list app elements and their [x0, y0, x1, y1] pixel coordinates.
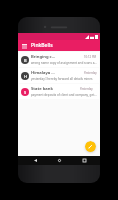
staticText: B [24, 58, 27, 63]
staticText: S [24, 90, 27, 95]
staticText: yesterday I hereby forward all details m… [31, 77, 93, 81]
staticText: Bringing copy of assig… [31, 54, 57, 60]
staticText: State bank [31, 86, 53, 92]
button[interactable]: Back [27, 156, 43, 165]
button[interactable]: H [19, 68, 99, 83]
button[interactable]: B [19, 52, 99, 67]
staticText: Yesterday [80, 87, 93, 91]
button[interactable]: Home [51, 156, 67, 165]
staticText: Yesterday [84, 71, 97, 75]
button[interactable]: Compose new message [85, 141, 96, 152]
staticText: wrong name copy of assignment and scans … [31, 61, 97, 65]
staticText: Himalaya mail [31, 70, 57, 76]
staticText: 10:12 PM [84, 55, 97, 59]
staticText: PinkBells [31, 42, 53, 49]
button[interactable]: Recent apps [76, 156, 92, 165]
button[interactable]: S [19, 84, 99, 99]
button[interactable]: Open navigation menu [20, 41, 29, 50]
staticText: payment deposits of client and company, … [31, 93, 97, 97]
staticText: H [24, 74, 27, 79]
